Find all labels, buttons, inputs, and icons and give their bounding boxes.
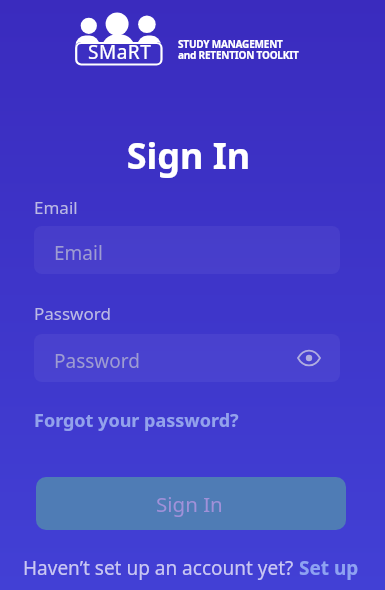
button[interactable]: Email — [34, 226, 340, 274]
staticText: STUDY MANAGEMENT — [178, 37, 283, 51]
staticText: and RETENTION TOOLKIT — [178, 48, 299, 62]
staticText: Password — [54, 348, 140, 374]
staticText: Haven’t set up an account yet? — [23, 555, 294, 581]
button[interactable]: Forgot your password? — [34, 408, 239, 433]
staticText: Sign In — [0, 131, 381, 180]
button[interactable]: Set up — [294, 555, 359, 581]
staticText: Email — [54, 240, 103, 266]
button[interactable]: Sign In — [36, 477, 346, 530]
button[interactable]: Password — [34, 334, 340, 382]
staticText: Password — [34, 302, 111, 325]
staticText: Sign In — [156, 490, 223, 518]
staticText: SMaRT — [88, 39, 152, 65]
staticText: Email — [34, 196, 78, 219]
button[interactable] — [298, 350, 320, 366]
